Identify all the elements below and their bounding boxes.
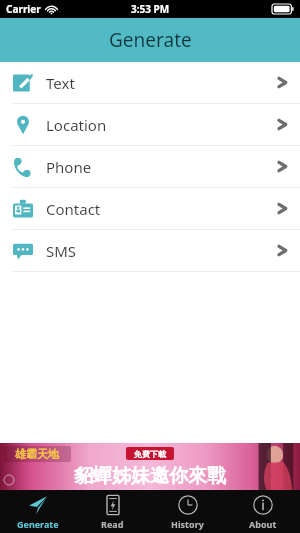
staticText: SMS <box>46 241 277 261</box>
button[interactable]: Text <box>0 62 300 103</box>
staticText: Generate <box>109 27 192 53</box>
staticText: Location <box>46 115 277 135</box>
staticText: About <box>249 518 277 530</box>
staticText: 貂蟬姊妹邀你來戰 <box>74 464 226 488</box>
button[interactable]: History <box>150 490 225 533</box>
staticText: Contact <box>46 199 277 219</box>
staticText: History <box>171 518 204 530</box>
staticText: 免費下載 <box>134 449 166 459</box>
button[interactable]: Phone <box>0 146 300 187</box>
staticText: Carrier <box>6 2 41 16</box>
staticText: Text <box>46 73 277 93</box>
staticText: 3:53 PM <box>131 2 170 16</box>
button[interactable]: Read <box>75 490 150 533</box>
staticText: 雄霸天地 <box>15 447 59 461</box>
button[interactable]: SMS <box>0 230 300 271</box>
button[interactable]: Location <box>0 104 300 145</box>
staticText: Phone <box>46 157 277 177</box>
button[interactable]: Advertisement <box>0 443 300 490</box>
button[interactable]: About <box>225 490 300 533</box>
staticText: Generate <box>17 518 59 530</box>
staticText: Read <box>101 518 124 530</box>
button[interactable]: Generate <box>0 490 75 533</box>
button[interactable]: Contact <box>0 188 300 229</box>
